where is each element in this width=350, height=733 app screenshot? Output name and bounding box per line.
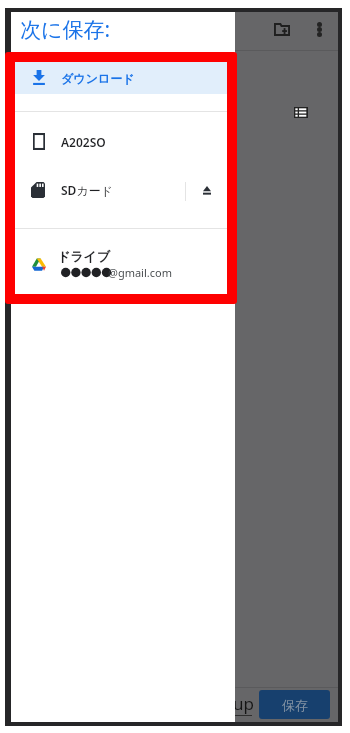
staticText: SDカード (61, 182, 113, 198)
button[interactable]: A202SO (11, 125, 235, 159)
button[interactable]: List view (289, 101, 313, 124)
staticText: ダウンロード (61, 71, 135, 86)
button[interactable]: SDカード (11, 173, 235, 207)
button[interactable]: Create new folder (268, 16, 296, 42)
button[interactable]: ダウンロード (11, 62, 235, 94)
staticText: ドライブ (57, 248, 111, 264)
staticText: 保存 (282, 697, 308, 713)
button[interactable]: ドライブ (11, 244, 235, 286)
button[interactable]: More options (309, 15, 330, 44)
staticText: @gmail.com (108, 265, 172, 280)
staticText: A202SO (61, 134, 106, 150)
staticText: up (233, 692, 254, 715)
button[interactable]: 保存 (259, 690, 330, 719)
button[interactable]: Eject SD card (197, 173, 217, 207)
staticText: 次に保存: (20, 15, 111, 44)
